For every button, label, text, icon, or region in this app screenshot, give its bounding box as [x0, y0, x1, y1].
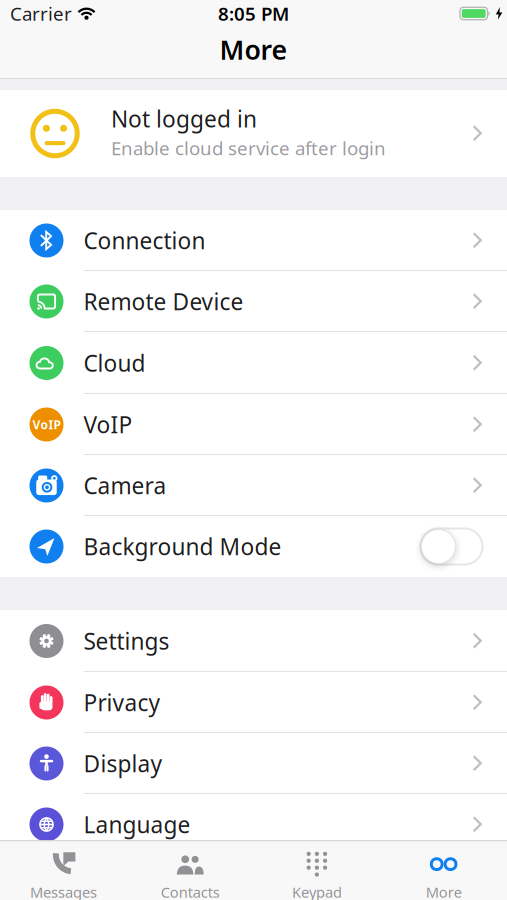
staticText: Privacy [83, 687, 160, 717]
button[interactable]: Keypad [253, 841, 380, 900]
button[interactable]: Language [0, 794, 507, 855]
staticText: Cloud [83, 348, 145, 378]
button[interactable]: Display [0, 733, 507, 794]
staticText: Connection [83, 225, 205, 255]
staticText: Keypad [292, 882, 342, 900]
staticText: Settings [83, 626, 169, 656]
staticText: Not logged in [111, 104, 257, 134]
staticText: Remote Device [83, 286, 243, 316]
staticText: Messages [30, 882, 97, 900]
staticText: VoIP [32, 416, 60, 432]
button[interactable]: More [380, 841, 507, 900]
button[interactable]: Camera [0, 455, 507, 516]
button[interactable]: Not logged in [0, 90, 507, 177]
button[interactable]: Remote Device [0, 271, 507, 332]
staticText: Display [83, 748, 162, 778]
button[interactable]: Settings [0, 610, 507, 672]
staticText: VoIP [83, 409, 132, 439]
button[interactable]: Contacts [127, 841, 254, 900]
staticText: Enable cloud service after login [111, 136, 386, 160]
staticText: Language [83, 809, 190, 839]
button[interactable]: Messages [0, 841, 127, 900]
button[interactable]: Privacy [0, 672, 507, 733]
staticText: Carrier [10, 1, 72, 26]
staticText: Contacts [161, 882, 220, 900]
staticText: More [219, 32, 287, 67]
staticText: Camera [83, 470, 166, 500]
staticText: 8:05 PM [218, 1, 289, 26]
button[interactable]: Cloud [0, 332, 507, 394]
staticText: More [426, 882, 462, 900]
staticText: Background Mode [83, 531, 281, 561]
button[interactable]: Background Mode [420, 528, 482, 564]
button[interactable]: Connection [0, 210, 507, 271]
button[interactable]: VoIP [0, 394, 507, 455]
